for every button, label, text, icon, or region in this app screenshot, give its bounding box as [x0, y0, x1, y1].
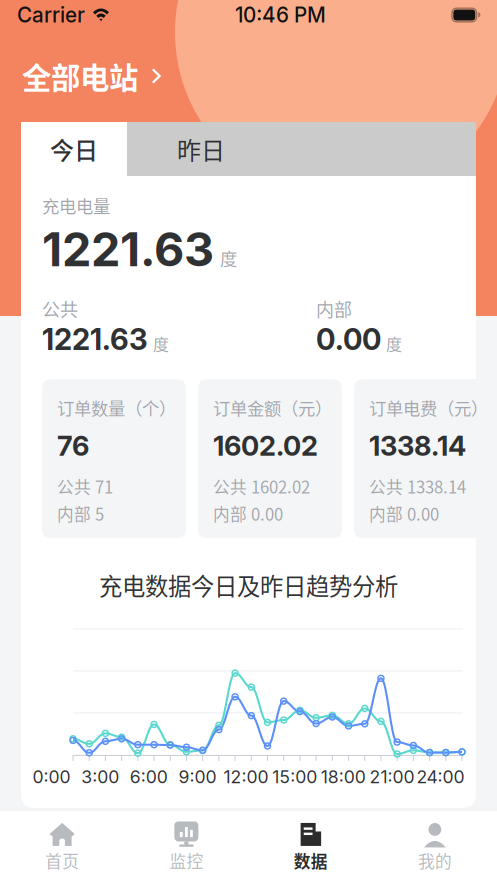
staticText: 公共 1338.14 [369, 474, 466, 498]
staticText: 76 [57, 429, 89, 462]
staticText: 订单电费（元） [369, 395, 488, 420]
staticText: 9:00 [178, 766, 216, 788]
staticText: 内部 0.00 [213, 501, 283, 525]
staticText: 内部 5 [57, 501, 104, 525]
staticText: 24:00 [416, 766, 464, 788]
staticText: 度 [220, 245, 237, 271]
staticText: 内部 [316, 296, 352, 322]
staticText: 6:00 [130, 766, 168, 788]
button[interactable]: 首页 [0, 816, 124, 878]
button[interactable]: 监控 [124, 816, 248, 878]
staticText: 公共 71 [57, 474, 113, 498]
staticText: 首页 [45, 848, 79, 872]
staticText: 度 [386, 332, 402, 355]
staticText: 订单金额（元） [213, 395, 332, 420]
staticText: 充电电量 [42, 193, 110, 218]
staticText: 公共 1602.02 [213, 474, 310, 498]
staticText: 我的 [418, 848, 452, 872]
button[interactable]: 昨日 [127, 122, 476, 176]
staticText: 1338.14 [369, 429, 466, 462]
staticText: 10:46 PM [235, 2, 326, 27]
staticText: 全部电站 [22, 55, 138, 97]
staticText: 内部 0.00 [369, 501, 439, 525]
staticText: 1221.63 [42, 221, 214, 278]
staticText: 1602.02 [213, 429, 318, 462]
staticText: 12:00 [223, 766, 268, 788]
staticText: Carrier [17, 2, 85, 27]
staticText: 21:00 [369, 766, 414, 788]
staticText: 监控 [169, 848, 203, 872]
staticText: 订单数量（个） [57, 395, 176, 420]
staticText: 度 [153, 332, 169, 355]
staticText: 今日 [50, 132, 98, 166]
button[interactable]: 今日 [21, 122, 127, 176]
staticText: 充电数据今日及昨日趋势分析 [99, 568, 398, 602]
staticText: 公共 [42, 296, 78, 322]
staticText: 昨日 [177, 132, 225, 166]
staticText: 1221.63 [42, 322, 148, 357]
staticText: 15:00 [272, 766, 317, 788]
staticText: 3:00 [81, 766, 119, 788]
staticText: 18:00 [321, 766, 366, 788]
button[interactable]: 数据 [248, 816, 373, 878]
staticText: 数据 [294, 848, 328, 872]
staticText: 0:00 [32, 766, 70, 788]
button[interactable]: 全部电站 [0, 30, 497, 122]
staticText: 0.00 [316, 322, 381, 357]
button[interactable]: 我的 [373, 816, 497, 878]
